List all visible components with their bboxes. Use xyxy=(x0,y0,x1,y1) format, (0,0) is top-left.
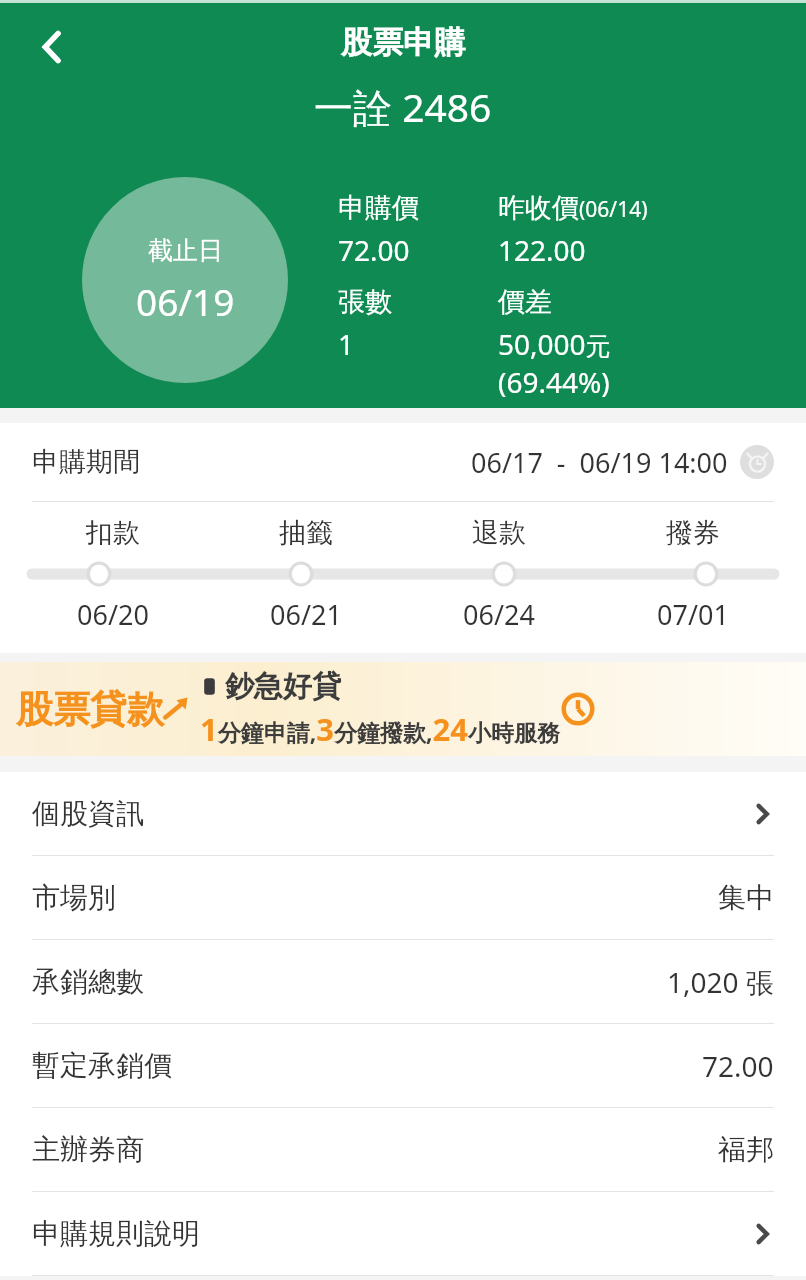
staticText: 1分鐘申請,3分鐘撥款,24小時服務 xyxy=(200,708,561,750)
staticText: 集中 xyxy=(718,880,774,915)
button[interactable]: 股票貸款 xyxy=(0,662,806,756)
staticText: 市場別 xyxy=(32,880,116,915)
staticText: (69.44%) xyxy=(498,363,610,401)
staticText: 主辦券商 xyxy=(32,1132,144,1167)
staticText: 撥券 xyxy=(666,516,720,550)
staticText: 鈔急好貸 xyxy=(225,668,341,705)
button[interactable]: 申購期間 xyxy=(0,423,806,501)
staticText: 價差 xyxy=(498,285,552,319)
staticText: 暫定承銷價 xyxy=(32,1048,172,1083)
staticText: 股票貸款 xyxy=(16,686,164,733)
button[interactable]: 暫定承銷價 xyxy=(0,1024,806,1107)
staticText: 申購規則說明 xyxy=(32,1216,200,1251)
button[interactable]: 承銷總數 xyxy=(0,940,806,1023)
staticText: 股票申購 xyxy=(341,23,465,62)
button[interactable]: 市場別 xyxy=(0,856,806,939)
staticText: 06/17 - 06/19 14:00 xyxy=(471,444,728,481)
staticText: 72.00 xyxy=(702,1047,774,1085)
staticText: 扣款 xyxy=(86,516,140,550)
staticText: 截止日 xyxy=(148,235,223,266)
staticText: 一詮 2486 xyxy=(314,80,492,133)
staticText: 申購期間 xyxy=(32,445,140,479)
staticText: 07/01 xyxy=(657,596,729,633)
staticText: 承銷總數 xyxy=(32,964,144,999)
staticText: 個股資訊 xyxy=(32,796,144,831)
staticText: 122.00 xyxy=(498,231,586,269)
button[interactable]: Set reminder xyxy=(740,445,774,479)
staticText: 退款 xyxy=(472,516,526,550)
staticText: 06/21 xyxy=(270,596,342,633)
button[interactable]: Back xyxy=(20,15,84,79)
staticText: 72.00 xyxy=(338,231,410,269)
button[interactable]: 申購規則說明 xyxy=(0,1192,806,1275)
staticText: 福邦 xyxy=(718,1132,774,1167)
staticText: 1 xyxy=(338,325,355,363)
staticText: 06/20 xyxy=(77,596,149,633)
staticText: 1,020 張 xyxy=(667,963,774,1001)
staticText: 50,000元 xyxy=(498,325,611,363)
staticText: 抽籤 xyxy=(279,516,333,550)
staticText: 昨收價(06/14) xyxy=(498,191,648,225)
staticText: 申購價 xyxy=(338,191,419,225)
staticText: 06/19 xyxy=(136,276,235,326)
staticText: 張數 xyxy=(338,285,392,319)
button[interactable]: 主辦券商 xyxy=(0,1108,806,1191)
button[interactable]: 個股資訊 xyxy=(0,772,806,855)
staticText: 06/24 xyxy=(463,596,535,633)
